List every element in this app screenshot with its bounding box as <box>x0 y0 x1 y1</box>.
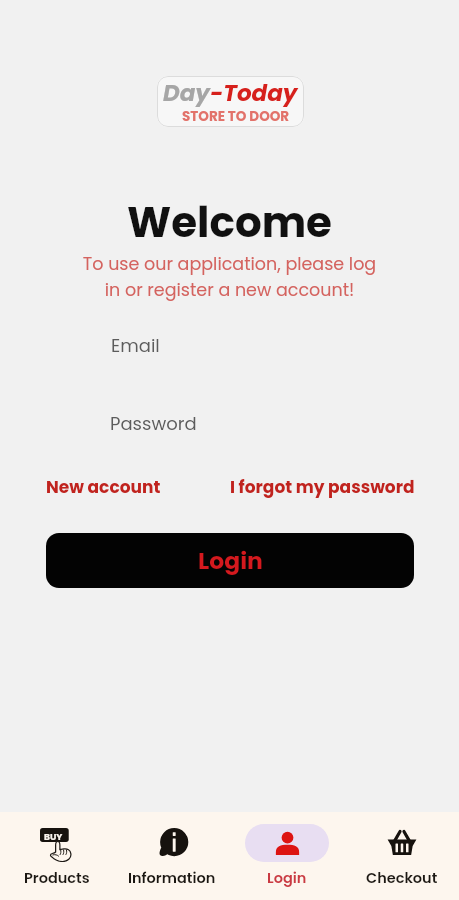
staticText: Day <box>163 77 210 109</box>
button[interactable]: Email <box>46 323 414 367</box>
staticText: Checkout <box>366 868 438 888</box>
other: Products <box>40 828 74 862</box>
staticText: Email <box>111 333 160 358</box>
button[interactable]: Password <box>46 401 414 445</box>
button[interactable]: Day <box>157 76 304 127</box>
staticText: To use our application, please log in or… <box>0 252 459 302</box>
other: Checkout <box>387 828 417 858</box>
staticText: Password <box>110 411 197 436</box>
button[interactable]: Information <box>114 812 229 900</box>
staticText: Products <box>24 868 90 888</box>
button[interactable]: Login <box>46 533 414 588</box>
staticText: -Today <box>210 77 298 109</box>
button[interactable]: Login <box>229 812 344 900</box>
staticText: New account <box>46 475 161 499</box>
staticText: I forgot my password <box>230 475 415 499</box>
other: Login <box>275 831 300 856</box>
staticText: STORE TO DOOR <box>182 107 290 125</box>
button[interactable]: Checkout <box>344 812 459 900</box>
other: Information <box>157 828 188 859</box>
button[interactable]: Products <box>0 812 114 900</box>
staticText: Login <box>198 544 263 577</box>
staticText: Information <box>128 868 216 888</box>
button[interactable]: I forgot my password <box>224 470 421 504</box>
button[interactable]: New account <box>40 470 167 504</box>
staticText: Login <box>267 868 307 888</box>
staticText: Welcome <box>0 193 459 252</box>
staticText: BUY <box>44 831 63 844</box>
